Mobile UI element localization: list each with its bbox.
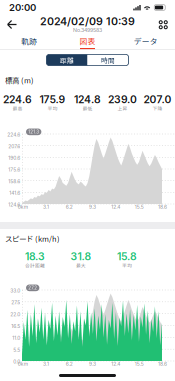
button[interactable]: データ (117, 34, 175, 49)
staticText: 27.5 (11, 299, 20, 305)
staticText: 0.0 (13, 359, 20, 365)
staticText: 12.4 (111, 361, 120, 367)
staticText: 18.6 (158, 361, 167, 367)
staticText: 15.5 (135, 204, 144, 210)
staticText: 最低 (82, 105, 92, 112)
staticText: 239.0 (108, 93, 137, 106)
staticText: 時間 (101, 55, 115, 65)
staticText: 190.6 (8, 155, 20, 161)
staticText: 20:00 (9, 2, 36, 13)
staticText: 最大 (76, 262, 86, 269)
staticText: 6.2 (66, 361, 73, 367)
staticText: 図表 (79, 35, 95, 47)
staticText: 11.0 (12, 335, 20, 341)
staticText: 22.0 (10, 311, 20, 317)
staticText: 軌跡 (21, 35, 37, 47)
staticText: 平均 (122, 262, 132, 269)
staticText: 31.8 (70, 250, 91, 263)
staticText: 158.6 (8, 178, 20, 184)
button[interactable]: Back (1, 15, 23, 34)
staticText: 9.3 (89, 204, 96, 210)
staticText: 0km (18, 204, 28, 210)
staticText: 6.2 (66, 204, 73, 210)
staticText: 2024/02/09 10:39 (40, 15, 135, 28)
staticText: 18.3 (25, 250, 45, 263)
staticText: 15.5 (135, 361, 144, 367)
button[interactable]: More options (152, 15, 174, 34)
staticText: 合計距離 (25, 262, 45, 269)
staticText: 3.1 (43, 361, 49, 367)
staticText: 207.6 (8, 143, 20, 149)
staticText: 上昇 (117, 105, 127, 112)
staticText: 224.6 (3, 93, 32, 106)
staticText: 207.0 (143, 93, 171, 106)
staticText: 121.3 (28, 129, 39, 135)
staticText: 175.9 (39, 93, 65, 106)
button[interactable]: 軌跡 (0, 34, 58, 49)
staticText: 9.3 (89, 361, 96, 367)
staticText: 標高 (m) (5, 75, 34, 85)
button[interactable]: 図表 (58, 34, 117, 49)
staticText: スピード (km/h) (5, 233, 60, 244)
staticText: 下降 (152, 105, 162, 112)
button[interactable]: 距離 (46, 54, 87, 65)
staticText: 15.8 (117, 250, 137, 263)
button[interactable]: 時間 (87, 54, 128, 65)
staticText: 18.6 (158, 204, 167, 210)
staticText: 224.6 (7, 132, 20, 138)
staticText: 124.6 (8, 202, 20, 208)
staticText: 141.6 (9, 190, 20, 196)
staticText: 最高 (12, 105, 22, 112)
staticText: 12.4 (111, 204, 120, 210)
staticText: 平均 (47, 105, 57, 112)
staticText: 0km (18, 361, 28, 367)
staticText: 175.6 (8, 167, 20, 173)
staticText: 16.5 (11, 323, 20, 329)
staticText: 3.1 (43, 204, 49, 210)
staticText: 距離 (60, 55, 74, 65)
staticText: データ (134, 35, 158, 47)
staticText: 124.8 (74, 93, 101, 106)
staticText: 5.5 (13, 347, 20, 353)
staticText: No.3499583 (73, 27, 102, 33)
staticText: 33.0 (10, 288, 20, 294)
staticText: 27.2 (28, 285, 37, 291)
